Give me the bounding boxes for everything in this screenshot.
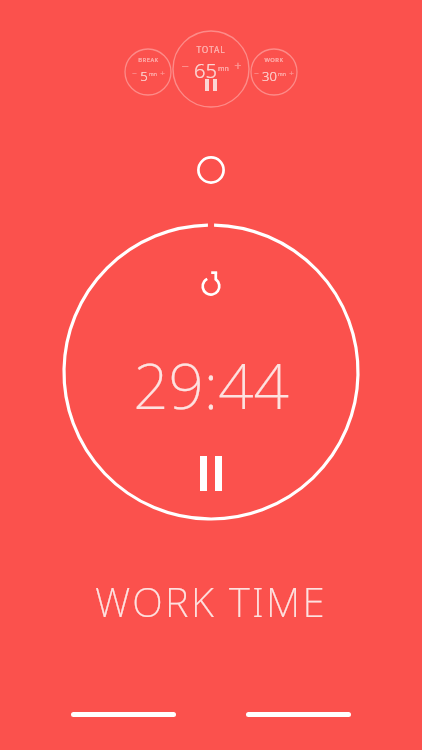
staticText: mn [278, 71, 286, 78]
staticText: 29:44 [133, 343, 289, 427]
button[interactable]: WORK TIME [0, 574, 422, 750]
staticText: − [181, 57, 189, 71]
staticText: WORK [264, 56, 284, 64]
staticText: 30 [262, 67, 277, 85]
staticText: − [132, 67, 137, 78]
staticText: TOTAL [196, 44, 226, 55]
staticText: + [289, 67, 294, 78]
button[interactable]: Session indicator [191, 150, 231, 190]
staticText: mn [218, 64, 229, 74]
staticText: WORK TIME [95, 574, 327, 628]
button[interactable]: Next [246, 705, 351, 723]
button[interactable]: Pause [194, 450, 228, 496]
button[interactable]: Reset timer [193, 267, 229, 303]
staticText: 5 [140, 67, 148, 85]
button[interactable]: Decrease total [178, 57, 192, 71]
button[interactable]: Break duration 5 minutes [124, 48, 172, 96]
button[interactable]: Increase total [231, 57, 245, 71]
staticText: 65 [194, 57, 217, 84]
staticText: + [234, 57, 242, 71]
staticText: mn [149, 71, 157, 78]
button[interactable]: Work duration 30 minutes [250, 48, 298, 96]
button[interactable]: Pause session [199, 76, 223, 94]
button[interactable]: Previous [71, 705, 176, 723]
staticText: BREAK [138, 56, 159, 64]
staticText: + [160, 67, 165, 78]
staticText: − [254, 67, 259, 78]
